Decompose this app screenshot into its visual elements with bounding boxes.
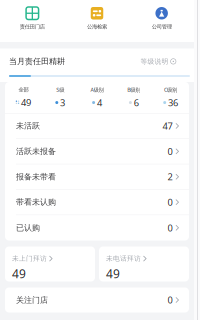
staticText: 关注门店	[16, 295, 48, 305]
staticText: 已认购	[16, 223, 40, 233]
button[interactable]: 未上门拜访	[5, 246, 95, 281]
staticText: 0	[167, 145, 172, 158]
button[interactable]: B级别	[115, 82, 152, 113]
staticText: 活跃未报备	[16, 146, 56, 156]
staticText: 0	[167, 294, 172, 306]
button[interactable]: 关注门店	[5, 287, 189, 312]
button[interactable]: 责任田门店	[0, 0, 65, 42]
button[interactable]: 等级说明	[141, 57, 176, 65]
staticText: 49	[12, 266, 26, 282]
button[interactable]: A级别	[79, 82, 115, 113]
button[interactable]: 未电话拜访	[99, 246, 189, 281]
staticText: 4	[97, 96, 102, 109]
staticText: 未上门拜访	[12, 254, 47, 263]
button[interactable]: 活跃未报备	[5, 139, 189, 164]
button[interactable]: C级别	[152, 82, 189, 113]
staticText: 未电话拜访	[106, 254, 141, 263]
staticText: C级别	[164, 86, 177, 93]
button[interactable]: 公海检索	[65, 0, 129, 42]
staticText: 带看未认购	[16, 197, 56, 207]
button[interactable]: 公司管理	[129, 0, 194, 42]
staticText: 49	[21, 96, 31, 108]
staticText: 报备未带看	[16, 172, 56, 182]
staticText: 2	[167, 171, 172, 183]
button[interactable]: 带看未认购	[5, 190, 189, 215]
staticText: 责任田门店	[20, 23, 45, 30]
staticText: 未活跃	[16, 121, 40, 131]
staticText: 公司管理	[152, 23, 172, 30]
staticText: 6	[134, 96, 139, 109]
staticText: 等级说明	[141, 57, 169, 65]
staticText: B级别	[127, 86, 140, 93]
button[interactable]: S级	[42, 82, 79, 113]
staticText: 47	[162, 120, 172, 132]
staticText: 49	[106, 266, 120, 282]
staticText: 当月责任田精耕	[9, 56, 65, 66]
button[interactable]: 未活跃	[5, 113, 189, 139]
staticText: 0	[167, 196, 172, 208]
staticText: 36	[168, 96, 178, 109]
button[interactable]: 全部	[5, 82, 42, 113]
staticText: A级别	[90, 86, 103, 93]
staticText: 0	[167, 222, 172, 234]
staticText: 全部	[18, 86, 28, 93]
button[interactable]: 报备未带看	[5, 164, 189, 190]
button[interactable]: 已认购	[5, 215, 189, 240]
staticText: 3	[60, 96, 65, 109]
staticText: 公海检索	[87, 23, 107, 30]
staticText: S级	[56, 86, 64, 93]
